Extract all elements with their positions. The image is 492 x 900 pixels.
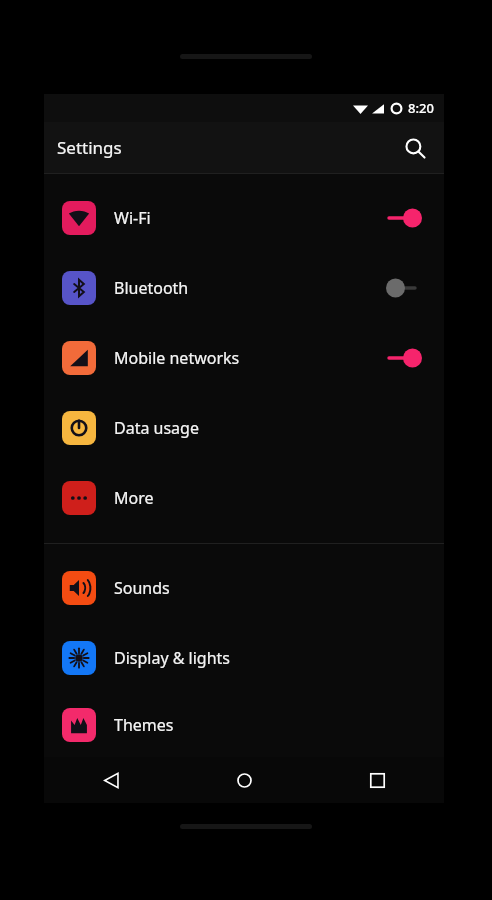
button[interactable]: Toggle Bluetooth	[380, 271, 426, 305]
staticText: More	[114, 487, 154, 509]
button[interactable]: Recent apps	[311, 757, 444, 803]
button[interactable]: Sounds	[44, 553, 444, 623]
staticText: Sounds	[114, 577, 170, 599]
button[interactable]: More	[44, 463, 444, 533]
staticText: Themes	[114, 714, 174, 736]
button[interactable]: Wi-Fi	[44, 183, 444, 253]
button[interactable]: Mobile networks	[44, 323, 444, 393]
staticText: Wi-Fi	[114, 207, 151, 229]
button[interactable]: Bluetooth	[44, 253, 444, 323]
button[interactable]: Home	[178, 757, 311, 803]
staticText: Bluetooth	[114, 277, 189, 299]
button[interactable]: Toggle Wi-Fi	[380, 201, 426, 235]
button[interactable]: Back	[44, 757, 178, 803]
staticText: Mobile networks	[114, 347, 240, 369]
staticText: Data usage	[114, 417, 199, 439]
staticText: Display & lights	[114, 647, 231, 669]
staticText: 8:20	[408, 99, 434, 117]
staticText: Settings	[57, 136, 122, 159]
button[interactable]: Search	[394, 127, 436, 169]
button[interactable]: Toggle Mobile networks	[380, 341, 426, 375]
button[interactable]: Display & lights	[44, 623, 444, 693]
button[interactable]: Data usage	[44, 393, 444, 463]
button[interactable]: Themes	[44, 693, 444, 757]
